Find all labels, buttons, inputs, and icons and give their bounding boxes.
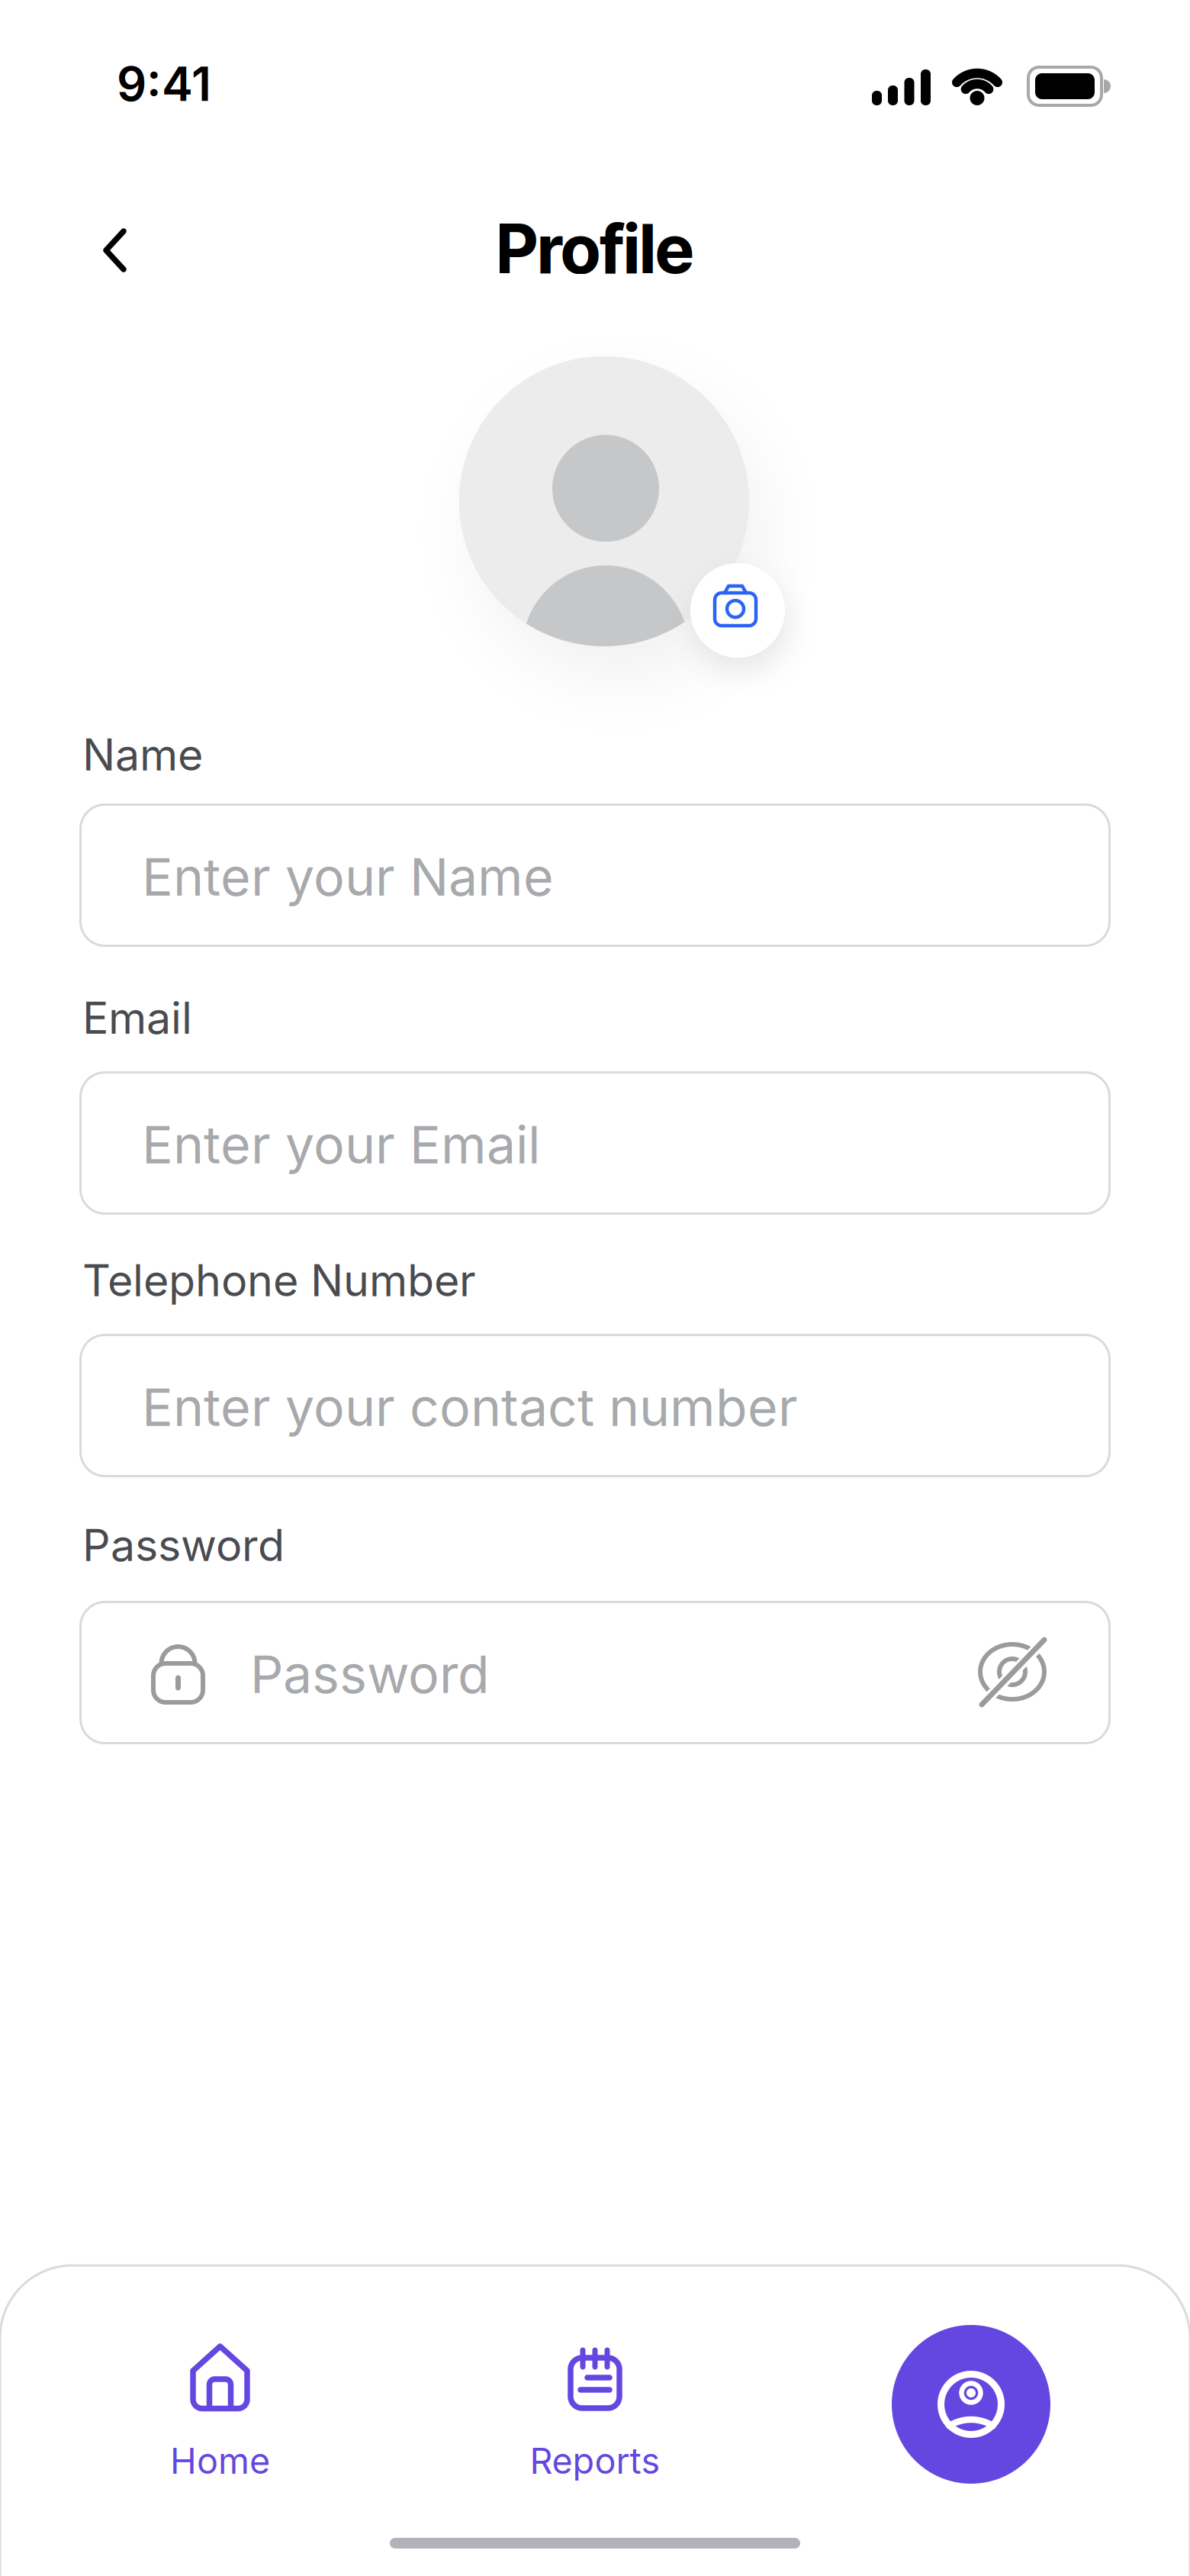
- staticText: Email: [82, 991, 192, 1044]
- button[interactable]: Enter your contact number: [79, 1334, 1111, 1477]
- button[interactable]: Reports: [496, 2323, 694, 2491]
- staticText: Home: [170, 2439, 270, 2482]
- staticText: Name: [82, 728, 203, 781]
- staticText: Enter your Name: [142, 845, 554, 908]
- staticText: Enter your Email: [142, 1113, 540, 1176]
- staticText: Profile: [496, 208, 694, 289]
- button[interactable]: Enter your Name: [79, 803, 1111, 947]
- button[interactable]: Password: [79, 1601, 1111, 1744]
- staticText: Reports: [530, 2439, 660, 2482]
- button[interactable]: [690, 563, 785, 658]
- button[interactable]: Home: [121, 2323, 319, 2491]
- staticText: Enter your contact number: [142, 1376, 798, 1438]
- button[interactable]: [892, 2325, 1050, 2484]
- button[interactable]: Enter your Email: [79, 1071, 1111, 1215]
- button[interactable]: [81, 217, 148, 284]
- staticText: 9:41: [117, 56, 211, 112]
- staticText: Password: [82, 1519, 285, 1572]
- staticText: Telephone Number: [82, 1254, 476, 1307]
- staticText: Password: [250, 1643, 490, 1706]
